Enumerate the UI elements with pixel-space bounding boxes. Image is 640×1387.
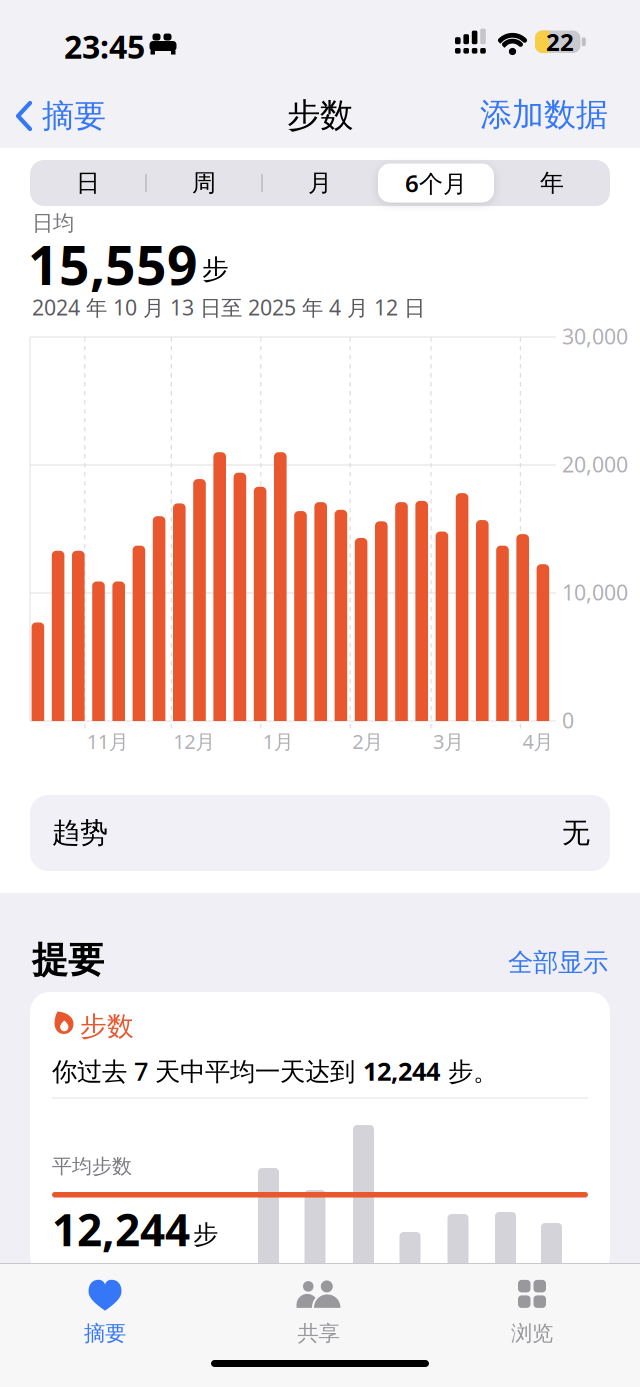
staticText: 2024 年 10 月 13 日至 2025 年 4 月 12 日 xyxy=(32,293,425,321)
button[interactable]: 全部显示 xyxy=(508,947,608,978)
staticText: 30,000 xyxy=(562,322,628,350)
staticText: 提要 xyxy=(32,938,104,982)
staticText: 添加数据 xyxy=(480,95,608,134)
staticText: 年 xyxy=(540,168,564,198)
button[interactable]: 共享 xyxy=(243,1269,393,1355)
staticText: 12月 xyxy=(173,728,215,755)
staticText: 步数 xyxy=(287,95,353,136)
staticText: 步 xyxy=(202,253,229,286)
staticText: 月 xyxy=(308,168,332,198)
button[interactable]: 6个月 xyxy=(378,160,494,206)
staticText: 日均 xyxy=(32,210,74,236)
staticText: 22 xyxy=(546,26,574,58)
staticText: 6个月 xyxy=(405,167,467,199)
button[interactable]: 年 xyxy=(494,160,610,206)
staticText: 平均步数 xyxy=(52,1154,132,1179)
staticText: 共享 xyxy=(297,1320,339,1347)
staticText: 2月 xyxy=(352,728,383,755)
staticText: 12,244 xyxy=(52,1200,190,1258)
staticText: 浏览 xyxy=(511,1320,553,1347)
staticText: 11月 xyxy=(87,728,129,755)
button[interactable]: 摘要 xyxy=(30,1269,180,1355)
staticText: 1月 xyxy=(263,728,294,755)
staticText: 全部显示 xyxy=(508,947,608,978)
staticText: 摘要 xyxy=(84,1320,126,1347)
staticText: 你过去 7 天中平均一天达到 12,244 步。 xyxy=(52,1054,498,1088)
staticText: 趋势 xyxy=(52,816,108,850)
button[interactable]: 浏览 xyxy=(457,1269,607,1355)
staticText: 步 xyxy=(193,1219,218,1250)
staticText: 15,559 xyxy=(28,229,198,300)
staticText: 20,000 xyxy=(562,450,628,478)
staticText: 10,000 xyxy=(562,578,628,606)
staticText: 步数 xyxy=(80,1010,134,1043)
button[interactable]: 日 xyxy=(30,160,146,206)
button[interactable]: 摘要 xyxy=(16,94,106,138)
button[interactable]: 添加数据 xyxy=(480,95,608,134)
staticText: 摘要 xyxy=(42,96,106,136)
staticText: 3月 xyxy=(433,728,464,755)
staticText: 无 xyxy=(562,816,590,850)
button[interactable]: 趋势 xyxy=(30,795,610,871)
button[interactable]: 周 xyxy=(146,160,262,206)
staticText: 0 xyxy=(562,706,574,734)
staticText: 日 xyxy=(76,168,100,198)
button[interactable]: 步数 xyxy=(30,992,610,1275)
staticText: 23:45 xyxy=(64,25,145,67)
staticText: 周 xyxy=(192,168,216,198)
button[interactable]: 月 xyxy=(262,160,378,206)
staticText: 4月 xyxy=(522,728,553,755)
